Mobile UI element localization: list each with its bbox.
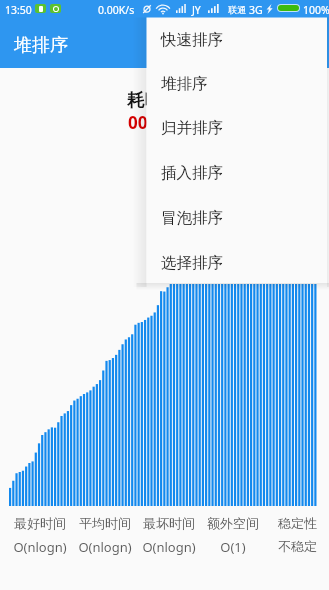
staticText: 00:00:00 <box>128 111 196 134</box>
staticText: O(nlogn) <box>13 538 67 556</box>
staticText: O(1) <box>220 538 246 556</box>
staticText: O(nlogn) <box>78 538 132 556</box>
button[interactable]: 归并排序 <box>147 106 327 150</box>
staticText: 最坏时间 <box>143 515 195 531</box>
staticText: 堆排序 <box>161 74 208 94</box>
staticText: 堆排序 <box>14 34 68 57</box>
staticText: 选择排序 <box>161 253 223 273</box>
staticText: 13:50 <box>5 3 32 17</box>
staticText: 插入排序 <box>161 163 223 183</box>
staticText: JY <box>192 3 201 17</box>
staticText: 最好时间 <box>14 515 66 531</box>
button[interactable]: 堆排序 <box>147 62 327 106</box>
button[interactable]: 冒泡排序 <box>147 195 327 240</box>
staticText: 100% <box>303 3 329 17</box>
staticText: 联通 <box>228 4 246 15</box>
staticText: 耗时 <box>127 89 162 111</box>
staticText: 冒泡排序 <box>161 208 223 228</box>
staticText: 额外空间 <box>207 515 259 531</box>
staticText: 平均时间 <box>79 515 131 531</box>
staticText: 快速排序 <box>161 30 223 50</box>
staticText: 3G <box>249 3 263 17</box>
button[interactable]: 插入排序 <box>147 150 327 195</box>
button[interactable]: 选择排序 <box>147 240 327 285</box>
staticText: 归并排序 <box>161 118 223 138</box>
staticText: 0.00K/s <box>98 3 135 17</box>
staticText: 稳定性 <box>278 515 317 531</box>
staticText: O(nlogn) <box>142 538 196 556</box>
button[interactable]: 快速排序 <box>147 18 327 62</box>
staticText: 不稳定 <box>278 538 317 554</box>
